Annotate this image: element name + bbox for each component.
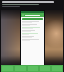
button[interactable] [22, 22, 43, 23]
button[interactable]: Navigate up [22, 14, 24, 16]
button[interactable] [22, 28, 43, 29]
button[interactable] [22, 39, 43, 40]
button[interactable] [22, 24, 43, 25]
button[interactable] [22, 21, 43, 22]
button[interactable] [22, 27, 43, 28]
button[interactable] [2, 1, 54, 3]
button[interactable] [22, 30, 43, 31]
button[interactable] [22, 34, 43, 35]
button[interactable] [22, 18, 43, 20]
button[interactable] [2, 4, 39, 5]
button[interactable] [0, 65, 64, 72]
button[interactable] [22, 31, 43, 32]
button[interactable] [22, 33, 43, 34]
button[interactable] [22, 36, 43, 37]
button[interactable] [22, 37, 43, 38]
button[interactable] [22, 40, 43, 41]
button[interactable] [22, 25, 43, 26]
